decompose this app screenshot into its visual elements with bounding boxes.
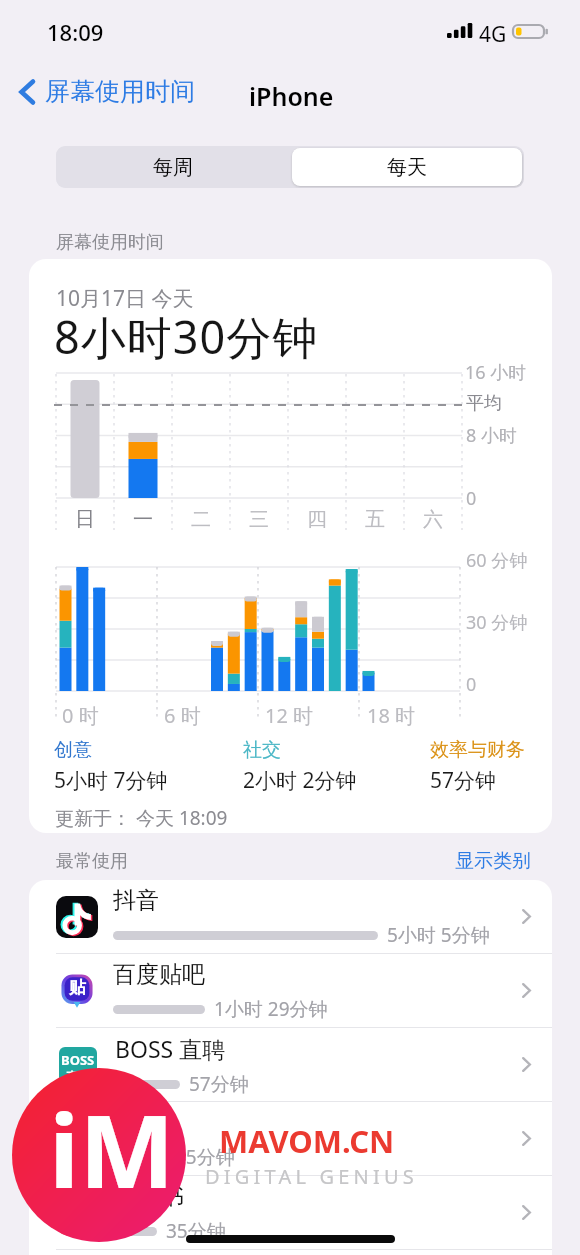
button[interactable]: BOSS: [29, 1028, 552, 1102]
staticText: 创意: [54, 738, 92, 762]
other: Details: [522, 909, 531, 924]
staticText: 0 时: [62, 702, 99, 729]
staticText: 57分钟: [189, 1071, 249, 1097]
staticText: 二: [191, 507, 211, 532]
staticText: 35分钟: [166, 1218, 226, 1244]
staticText: 直聘: [66, 1069, 90, 1083]
staticText: 8小时30分钟: [54, 306, 319, 367]
staticText: 每天: [387, 155, 427, 180]
staticText: BOSS 直聘: [115, 1033, 226, 1064]
button[interactable]: 微信: [29, 1102, 552, 1176]
staticText: 6 时: [164, 702, 201, 729]
staticText: 贴: [69, 977, 86, 998]
button[interactable]: 抖音: [29, 880, 552, 954]
staticText: 平均: [466, 392, 502, 415]
staticText: 16 小时: [465, 360, 527, 385]
staticText: 8 小时: [466, 423, 517, 448]
staticText: 10月17日 今天: [56, 284, 194, 313]
staticText: 1小时 29分钟: [214, 996, 328, 1022]
staticText: iM: [49, 1080, 175, 1218]
staticText: 30 分钟: [466, 610, 528, 635]
button[interactable]: 每周: [56, 146, 290, 188]
staticText: 5小时 7分钟: [54, 766, 168, 795]
staticText: 显示类别: [455, 849, 531, 873]
staticText: 屏幕使用时间: [45, 76, 195, 107]
staticText: 57分钟: [430, 766, 497, 795]
staticText: 小红书: [115, 1182, 184, 1211]
staticText: 12 时: [265, 702, 314, 729]
staticText: 微信: [115, 1108, 161, 1137]
staticText: BOSS: [61, 1051, 95, 1069]
other: Details: [522, 1131, 531, 1146]
staticText: 0: [466, 672, 477, 697]
staticText: iPhone: [249, 79, 334, 113]
staticText: 每周: [153, 155, 193, 180]
staticText: 60 分钟: [466, 548, 528, 573]
staticText: 四: [307, 507, 327, 532]
staticText: 45分钟: [175, 1144, 235, 1170]
staticText: 18 时: [367, 702, 416, 729]
staticText: 屏幕使用时间: [56, 231, 164, 254]
staticText: 日: [75, 507, 95, 532]
staticText: 更新于： 今天 18:09: [55, 805, 228, 831]
other: Details: [522, 1057, 531, 1072]
button[interactable]: 贴: [29, 954, 552, 1028]
staticText: 效率与财务: [430, 738, 525, 762]
button[interactable]: 显示类别: [451, 845, 535, 877]
staticText: 2小时 2分钟: [243, 766, 357, 795]
staticText: 一: [133, 507, 153, 532]
staticText: 18:09: [47, 17, 104, 47]
staticText: 社交: [243, 738, 281, 762]
staticText: 最常使用: [56, 850, 128, 873]
staticText: 抖音: [113, 886, 159, 915]
staticText: 5小时 5分钟: [387, 922, 490, 948]
staticText: MAVOM.CN: [219, 1120, 395, 1162]
button[interactable]: 屏幕使用时间: [11, 71, 203, 112]
staticText: 五: [365, 507, 385, 532]
staticText: 百度贴吧: [113, 960, 205, 989]
button[interactable]: 小红书: [29, 1176, 552, 1250]
other: Details: [522, 983, 531, 998]
staticText: 4G: [479, 20, 507, 49]
staticText: 三: [249, 507, 269, 532]
button[interactable]: 每天: [292, 148, 522, 186]
staticText: 0: [466, 486, 477, 511]
other: Details: [522, 1205, 531, 1220]
staticText: DIGITAL GENIUS: [205, 1163, 418, 1190]
staticText: 六: [423, 507, 443, 532]
